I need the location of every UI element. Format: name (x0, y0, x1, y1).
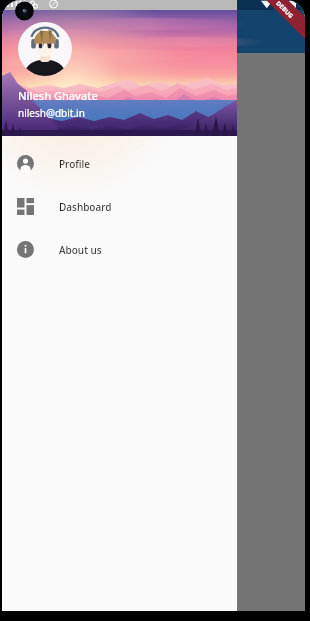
staticText: Profile (59, 157, 90, 171)
staticText: nilesh@dbit.in (18, 106, 85, 120)
staticText: Nilesh Ghavate (18, 88, 98, 103)
staticText: Dashboard (59, 200, 112, 214)
button[interactable]: Dashboard (2, 185, 237, 228)
staticText: DEBUG (274, 0, 296, 21)
staticText: About us (59, 243, 102, 257)
button[interactable]: Profile (2, 142, 237, 185)
button[interactable]: About us (2, 228, 237, 271)
